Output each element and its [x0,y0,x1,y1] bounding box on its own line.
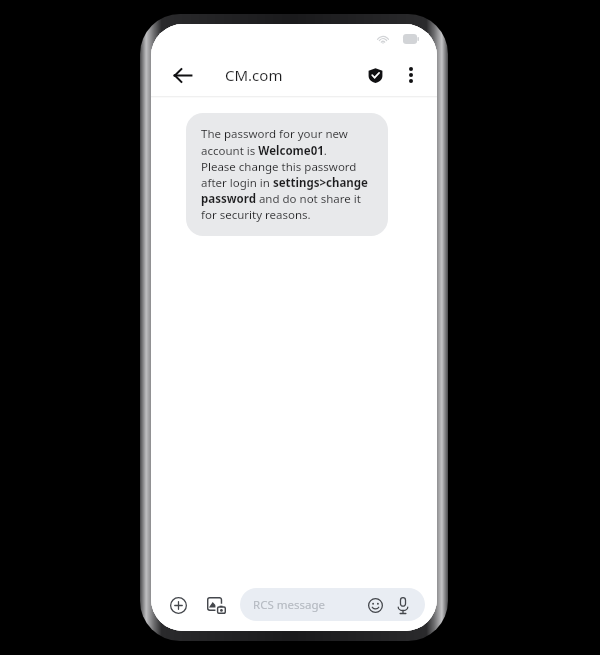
button[interactable]: Add attachment [163,590,193,620]
button[interactable]: Voice input [391,593,415,617]
button[interactable]: Verified sender [360,60,390,90]
button[interactable]: The password for your new account is Wel… [186,113,388,236]
staticText: RCS message [253,597,363,613]
staticText: The password for your new account is Wel… [201,126,374,222]
button[interactable]: Back [167,60,197,90]
button[interactable]: Camera and gallery [201,590,231,620]
button[interactable]: More options [396,60,426,90]
button[interactable]: Emoji [363,593,387,617]
button[interactable]: RCS message [240,588,425,621]
staticText: CM.com [225,65,283,85]
